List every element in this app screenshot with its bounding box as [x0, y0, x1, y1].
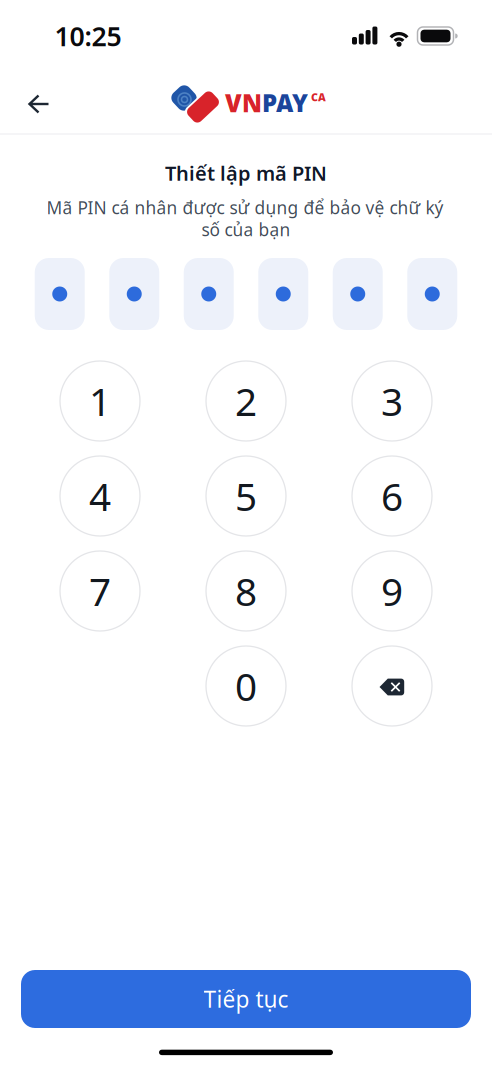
button[interactable]: 2	[206, 361, 286, 441]
staticText: 8	[235, 565, 257, 617]
staticText: 4	[89, 470, 111, 522]
staticText: số của bạn	[201, 218, 290, 241]
button[interactable]: Tiếp tục	[21, 970, 471, 1028]
staticText: Tiếp tục	[203, 984, 288, 1014]
staticText: 2	[235, 375, 257, 427]
staticText: 1	[89, 375, 111, 427]
button[interactable]: 9	[352, 551, 432, 631]
button[interactable]: 7	[60, 551, 140, 631]
staticText: Mã PIN cá nhân được sử dụng để bảo vệ ch…	[46, 196, 443, 219]
staticText: 9	[381, 565, 403, 617]
staticText: 6	[381, 470, 403, 522]
staticText: CA	[311, 90, 326, 104]
staticText: 0	[235, 660, 257, 712]
button[interactable]: 4	[60, 456, 140, 536]
button[interactable]: 3	[352, 361, 432, 441]
staticText: VN	[225, 87, 262, 119]
button[interactable]: 6	[352, 456, 432, 536]
staticText: 3	[381, 375, 403, 427]
staticText: Thiết lập mã PIN	[165, 160, 327, 186]
staticText: 7	[89, 565, 111, 617]
button[interactable]: Back	[17, 82, 61, 126]
staticText: 10:25	[54, 18, 121, 54]
staticText: PAY	[262, 87, 308, 119]
button[interactable]: Delete	[352, 646, 432, 726]
button[interactable]: 0	[206, 646, 286, 726]
staticText: 5	[235, 470, 257, 522]
button[interactable]: 8	[206, 551, 286, 631]
button[interactable]: 5	[206, 456, 286, 536]
button[interactable]: 1	[60, 361, 140, 441]
